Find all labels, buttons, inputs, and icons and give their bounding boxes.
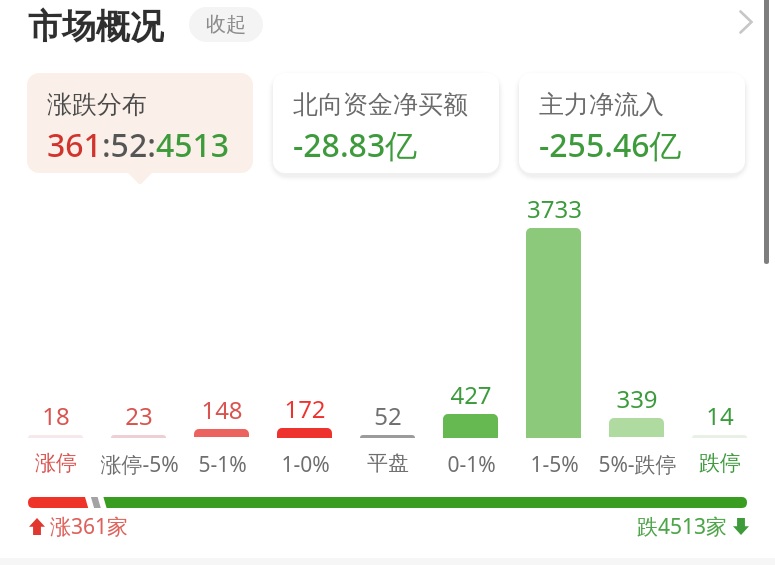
staticText: 跌4513家 xyxy=(637,512,728,541)
staticText: 跌停 xyxy=(699,450,741,476)
button[interactable] xyxy=(97,190,180,475)
staticText: -255.46亿 xyxy=(539,123,682,167)
button[interactable] xyxy=(678,190,761,475)
staticText: 23 xyxy=(125,399,153,432)
button[interactable]: 市场概况 xyxy=(28,5,164,45)
button[interactable]: 涨361家 xyxy=(29,512,129,541)
staticText: 5-1% xyxy=(198,450,247,479)
button[interactable]: 跌4513家 xyxy=(637,512,749,541)
staticText: 涨停 xyxy=(35,450,77,476)
button[interactable]: 主力净流入 xyxy=(519,73,745,173)
button[interactable] xyxy=(429,190,512,475)
button[interactable] xyxy=(180,190,263,475)
staticText: 18 xyxy=(42,399,70,432)
staticText: 市场概况 xyxy=(28,5,164,45)
staticText: 平盘 xyxy=(367,450,409,476)
button[interactable]: 收起 xyxy=(189,7,263,42)
button[interactable] xyxy=(595,190,678,475)
staticText: 收起 xyxy=(206,12,246,37)
staticText: 148 xyxy=(201,393,243,426)
button[interactable] xyxy=(346,190,429,475)
staticText: 361:52:4513 xyxy=(47,123,230,167)
staticText: 1-0% xyxy=(281,450,330,479)
staticText: 北向资金净买额 xyxy=(293,89,468,120)
staticText: 1-5% xyxy=(530,450,579,479)
staticText: 427 xyxy=(450,378,492,411)
staticText: 339 xyxy=(616,382,658,415)
staticText: 52 xyxy=(374,399,402,432)
staticText: 涨361家 xyxy=(50,512,129,541)
staticText: 涨停-5% xyxy=(100,450,179,479)
staticText: 5%-跌停 xyxy=(598,450,677,479)
button[interactable] xyxy=(14,190,97,475)
staticText: -28.83亿 xyxy=(293,123,418,167)
button[interactable]: 北向资金净买额 xyxy=(273,73,499,173)
staticText: 14 xyxy=(706,399,734,432)
staticText: 0-1% xyxy=(447,450,496,479)
button[interactable]: 涨跌分布 xyxy=(27,73,253,173)
staticText: 172 xyxy=(284,392,326,425)
button[interactable] xyxy=(263,190,346,475)
staticText: 3733 xyxy=(527,192,582,225)
staticText: 涨跌分布 xyxy=(47,89,147,120)
button[interactable] xyxy=(512,190,595,475)
button[interactable]: 展开更多 xyxy=(726,2,766,42)
staticText: 主力净流入 xyxy=(539,89,664,120)
